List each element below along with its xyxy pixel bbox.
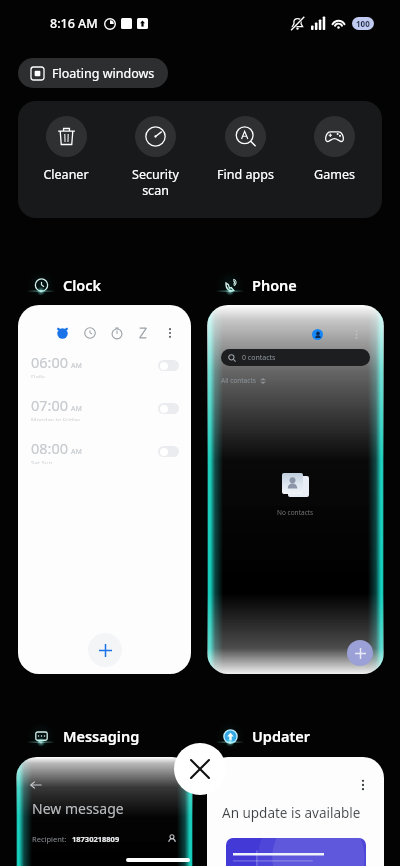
staticText: An update is available [222, 804, 361, 822]
staticText: Phone [252, 275, 297, 295]
button[interactable]: Add alarm [88, 633, 122, 667]
button[interactable]: Find apps [204, 101, 286, 183]
staticText: Recipient: [32, 834, 67, 844]
staticText: AM [71, 404, 82, 414]
button[interactable]: Games [293, 101, 375, 183]
button[interactable]: 0 contacts [210, 307, 381, 672]
button[interactable]: Phone [216, 270, 297, 300]
staticText: All contacts [221, 376, 256, 385]
button[interactable]: Messaging [27, 721, 140, 751]
staticText: Games [314, 166, 355, 183]
staticText: 18730218809 [72, 834, 120, 844]
staticText: Find apps [217, 166, 274, 183]
staticText: Updater [252, 726, 311, 746]
staticText: 07:00 [31, 395, 69, 415]
staticText: New message [32, 799, 124, 818]
button[interactable]: 06:00 [31, 352, 179, 378]
staticText: 08:00 [31, 438, 69, 458]
staticText: Security scan [132, 166, 179, 198]
other: Toggle alarm [158, 403, 179, 414]
staticText: Cleaner [43, 166, 89, 183]
staticText: 100 [356, 18, 370, 29]
staticText: 8:16 AM [50, 15, 98, 32]
button[interactable]: Close all [174, 743, 226, 795]
staticText: Clock [63, 275, 102, 295]
button[interactable]: 06:00 [18, 305, 191, 674]
button[interactable]: 08:00 [31, 438, 179, 464]
staticText: Messaging [63, 726, 140, 746]
button[interactable]: Add contact [347, 640, 373, 666]
button[interactable]: Clock [27, 270, 102, 300]
button[interactable]: Updater [216, 721, 311, 751]
button[interactable]: 07:00 [31, 395, 179, 421]
staticText: Daily [31, 373, 45, 378]
staticText: Sat Sun [31, 459, 53, 464]
staticText: AM [71, 361, 82, 371]
staticText: 0 contacts [242, 353, 276, 363]
button[interactable]: Security scan [114, 101, 196, 198]
staticText: No contacts [277, 508, 314, 517]
staticText: Floating windows [52, 65, 155, 82]
button[interactable]: An update is available [207, 757, 384, 866]
staticText: AM [71, 447, 82, 457]
other: Toggle alarm [158, 360, 179, 371]
button[interactable]: Cleaner [25, 101, 107, 183]
other: Toggle alarm [158, 446, 179, 457]
staticText: 06:00 [31, 352, 69, 372]
button[interactable]: New message [19, 759, 190, 866]
staticText: Monday to Friday [31, 416, 81, 421]
button[interactable]: Floating windows [18, 58, 168, 88]
